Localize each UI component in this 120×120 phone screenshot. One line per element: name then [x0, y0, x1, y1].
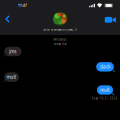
staticText: slack	[100, 64, 110, 70]
staticText: Read 10:31 2024	[91, 97, 117, 100]
button[interactable]: Back	[0, 11, 14, 27]
button[interactable]: Soren & Alexandre Dekk…	[23, 10, 97, 32]
staticText: jms	[9, 48, 16, 55]
button[interactable]: FaceTime video call	[100, 12, 116, 28]
staticText: 11:47	[18, 3, 27, 8]
staticText: iMessage	[53, 38, 67, 41]
staticText: Soren & Alexandre Dekk…	[43, 28, 74, 31]
staticText: Today 11:47	[53, 42, 66, 45]
staticText: mult	[7, 74, 17, 80]
staticText: mult	[100, 87, 110, 93]
